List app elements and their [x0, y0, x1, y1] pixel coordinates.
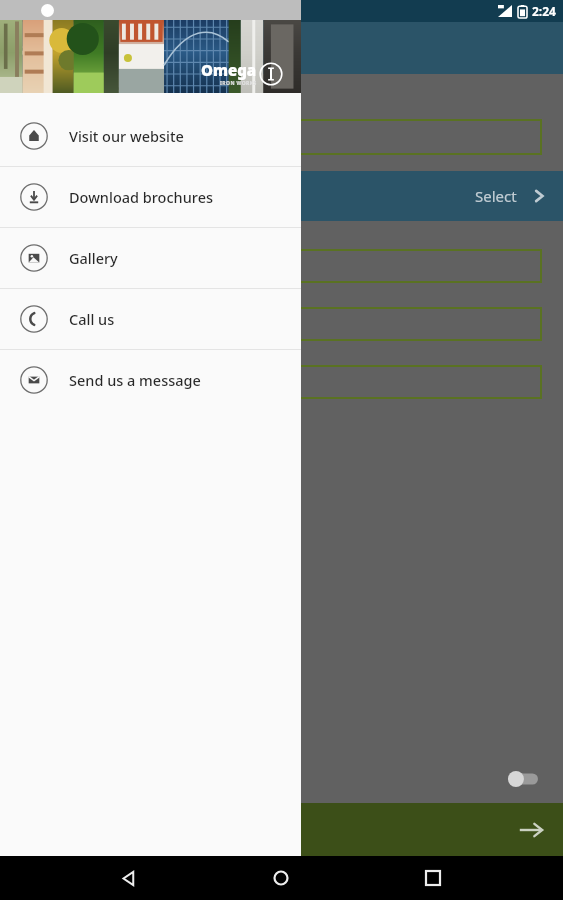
button[interactable]: Radio: [110, 87, 128, 105]
other: Select: [531, 188, 547, 204]
button[interactable]: Gallery: [0, 228, 301, 288]
staticText: Call us: [69, 309, 115, 329]
button[interactable]: Visit our website: [0, 106, 301, 166]
button[interactable]: 3 x 3: [22, 308, 541, 340]
staticText: Fence Finish: [22, 230, 100, 248]
button[interactable]: Home: [259, 856, 303, 900]
button[interactable]: Download brochures: [0, 167, 301, 227]
button[interactable]: Inground: [22, 366, 541, 398]
button[interactable]: Back: [107, 856, 151, 900]
button[interactable]: No: [0, 755, 563, 803]
staticText: Download brochures: [69, 187, 213, 207]
staticText: IRON WORKS: [220, 80, 257, 87]
staticText: USA: [136, 86, 163, 105]
staticText: Post installation: [22, 346, 124, 364]
staticText: 3 x 3: [35, 314, 67, 334]
staticText: Canada: [50, 86, 100, 105]
button[interactable]: CALCULATE: [0, 803, 563, 856]
button[interactable]: Galvanized: [22, 250, 541, 282]
staticText: Omega: [201, 60, 257, 80]
button[interactable]: 25: [22, 120, 541, 154]
staticText: Send us a message: [69, 370, 201, 390]
button[interactable]: Radio: [24, 87, 42, 105]
staticText: Visit our website: [69, 126, 184, 146]
button[interactable]: Select: [0, 171, 563, 221]
staticText: 2:24: [532, 3, 556, 19]
button[interactable]: Toggle: [503, 769, 541, 789]
button[interactable]: Call us: [0, 289, 301, 349]
staticText: Inground: [35, 372, 100, 392]
staticText: 25: [35, 127, 52, 147]
button[interactable]: Recents: [411, 856, 455, 900]
button[interactable]: Send us a message: [0, 350, 301, 410]
other: Calculate: [517, 816, 545, 844]
staticText: Post size (in.): [22, 288, 105, 306]
staticText: Galvanized: [35, 256, 110, 276]
staticText: Select: [475, 186, 517, 206]
staticText: Gallery: [69, 248, 118, 268]
staticText: Calculator: [10, 37, 91, 60]
